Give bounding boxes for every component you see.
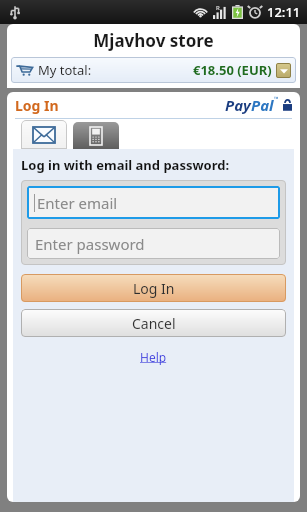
staticText: R	[216, 4, 220, 12]
button[interactable]: Phone login tab	[73, 122, 119, 149]
staticText: ™	[274, 95, 279, 103]
staticText: Log in with email and password:	[21, 156, 230, 174]
button[interactable]: Log In	[21, 274, 286, 302]
staticText: Log In	[133, 279, 175, 298]
button[interactable]: My total:	[11, 57, 296, 83]
staticText: Cancel	[132, 314, 176, 333]
staticText: €18.50 (EUR)	[193, 61, 272, 79]
button[interactable]: Cancel	[21, 309, 286, 337]
staticText: Pal	[251, 95, 274, 115]
button[interactable]: Expand total	[276, 63, 291, 78]
staticText: Enter password	[35, 234, 145, 254]
staticText: My total:	[38, 61, 92, 79]
staticText: Enter email	[37, 193, 118, 213]
button[interactable]: Enter password	[27, 228, 280, 259]
staticText: 12:11	[267, 3, 301, 21]
button[interactable]: Help	[140, 349, 167, 365]
button[interactable]: Enter email	[27, 186, 280, 219]
button[interactable]: Email login tab	[21, 120, 67, 149]
staticText: Log In	[15, 96, 59, 115]
staticText: Pay	[225, 95, 251, 115]
staticText: Mjavhov store	[7, 29, 300, 52]
